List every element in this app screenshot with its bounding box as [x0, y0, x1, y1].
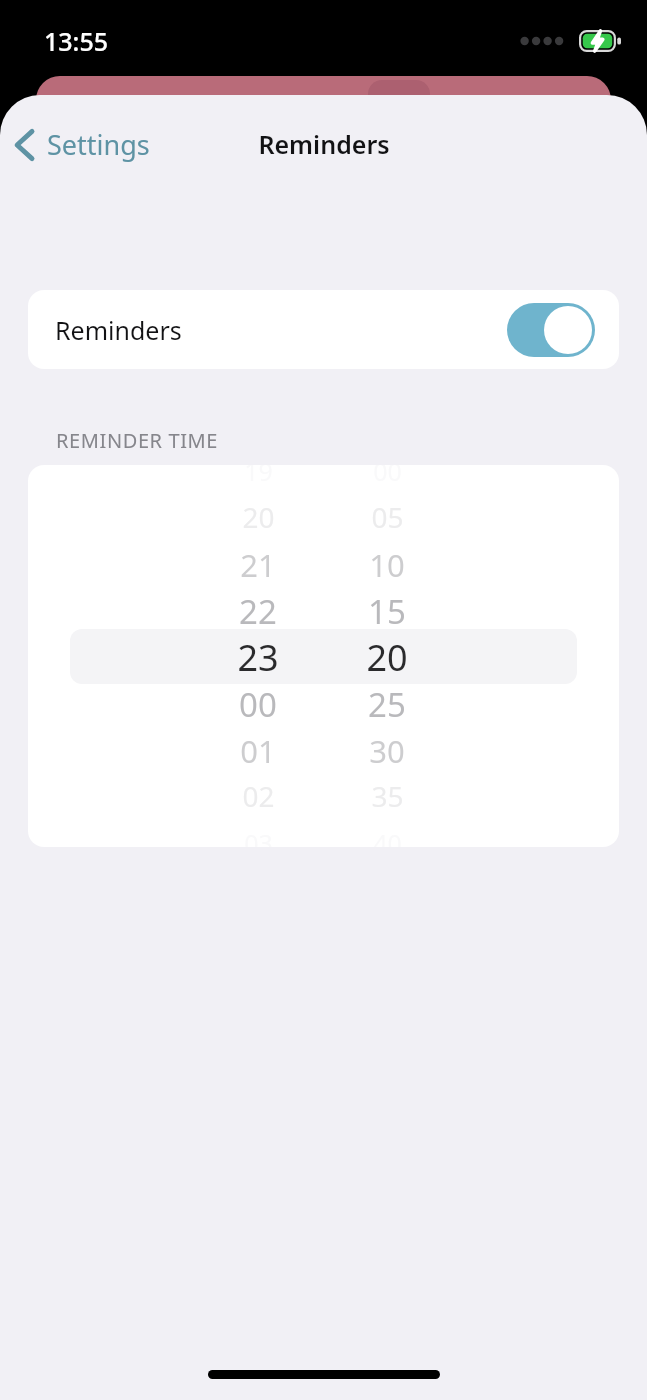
button[interactable]: 23 [198, 630, 318, 684]
staticText: 23 [237, 633, 279, 682]
staticText: 00 [239, 682, 277, 727]
button[interactable]: 02 [198, 775, 318, 817]
staticText: 02 [242, 777, 275, 815]
staticText: 10 [369, 544, 405, 586]
button[interactable]: 10 [327, 541, 447, 588]
button[interactable]: 35 [327, 775, 447, 817]
other: Minute picker [28, 465, 619, 847]
staticText: 21 [240, 544, 276, 586]
other: Hour picker [28, 465, 619, 847]
staticText: 05 [371, 498, 404, 536]
staticText: 35 [371, 777, 404, 815]
button[interactable]: 00 [198, 679, 318, 729]
staticText: 13:55 [44, 24, 109, 58]
staticText: 01 [240, 730, 276, 772]
button[interactable]: 25 [327, 679, 447, 729]
staticText: 20 [366, 633, 408, 682]
button[interactable]: Settings [0, 120, 162, 169]
staticText: 20 [242, 498, 275, 536]
button[interactable]: 01 [198, 727, 318, 774]
button[interactable]: 21 [198, 541, 318, 588]
staticText: 25 [368, 682, 406, 727]
staticText: 30 [369, 730, 405, 772]
button[interactable]: 15 [327, 586, 447, 636]
staticText: Settings [47, 126, 150, 163]
button[interactable]: Reminders toggle, on [507, 303, 595, 357]
staticText: Reminders [258, 127, 390, 161]
staticText: 22 [239, 589, 277, 634]
staticText: Reminders [55, 313, 182, 347]
button[interactable]: 05 [327, 496, 447, 538]
staticText: 15 [368, 589, 406, 634]
button[interactable]: Reminders [28, 290, 619, 369]
button[interactable]: 20 [327, 630, 447, 684]
button[interactable]: 30 [327, 727, 447, 774]
button[interactable]: 20 [198, 496, 318, 538]
staticText: REMINDER TIME [56, 427, 218, 454]
button[interactable]: 22 [198, 586, 318, 636]
